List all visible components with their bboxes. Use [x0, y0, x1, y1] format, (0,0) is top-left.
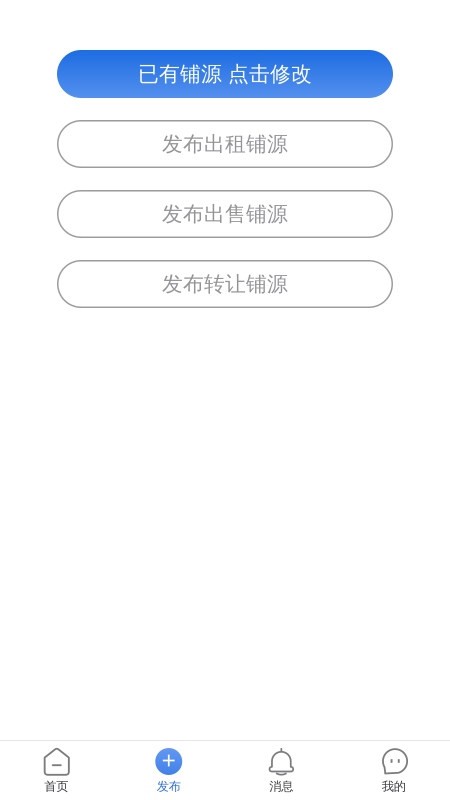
staticText: 发布转让铺源 — [162, 271, 288, 297]
staticText: 发布 — [157, 779, 181, 794]
staticText: 首页 — [44, 779, 68, 794]
staticText: 已有铺源 点击修改 — [138, 61, 312, 87]
button[interactable]: 发布出售铺源 — [57, 190, 393, 238]
button[interactable]: 消息 — [225, 741, 337, 800]
button[interactable]: 我的 — [337, 741, 450, 800]
staticText: 消息 — [269, 779, 293, 794]
button[interactable]: 首页 — [0, 741, 112, 800]
staticText: 发布出售铺源 — [162, 201, 288, 227]
button[interactable]: 发布出租铺源 — [57, 120, 393, 168]
staticText: 我的 — [382, 779, 406, 794]
button[interactable]: 发布 — [112, 741, 225, 800]
button[interactable]: 发布转让铺源 — [57, 260, 393, 308]
button[interactable]: 已有铺源 点击修改 — [57, 50, 393, 98]
staticText: 发布出租铺源 — [162, 131, 288, 157]
